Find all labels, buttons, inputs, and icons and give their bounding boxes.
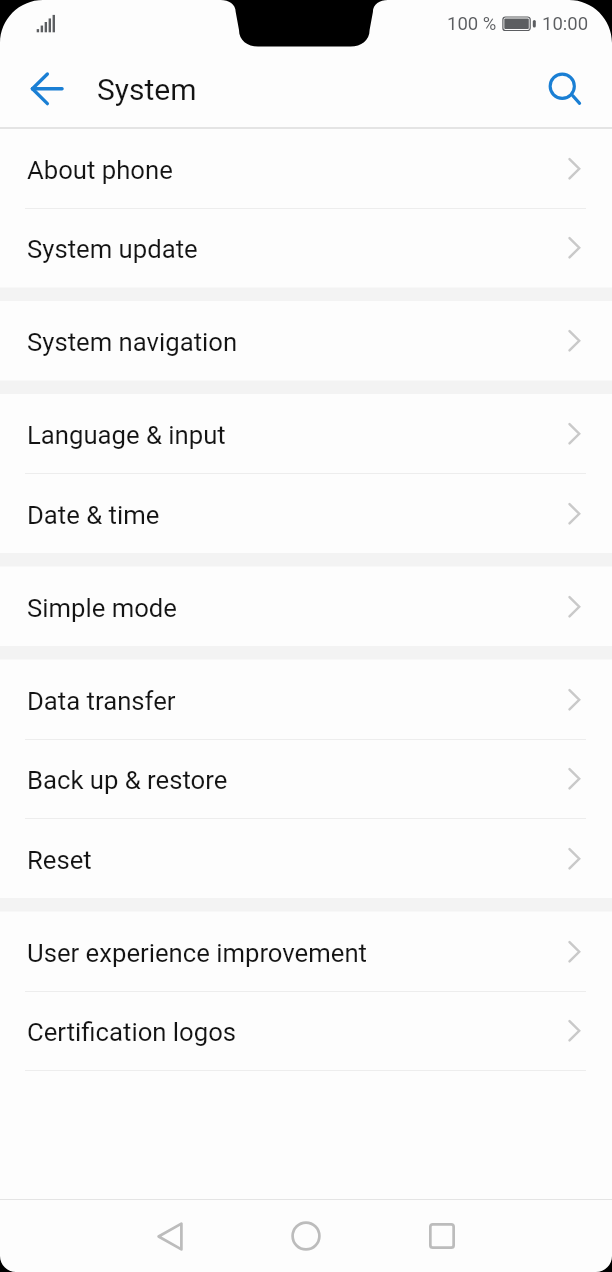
staticText: 10:00 [542,13,589,35]
staticText: System navigation [27,327,238,357]
staticText: Back up & restore [27,765,228,795]
button[interactable]: System update [0,208,612,288]
button[interactable]: About phone [0,129,612,209]
button[interactable]: Certification logos [0,991,612,1071]
button[interactable]: Language & input [0,394,612,474]
button[interactable]: User experience improvement [0,912,612,992]
staticText: Certification logos [27,1017,237,1047]
button[interactable]: Back [15,57,79,117]
staticText: About phone [27,155,173,185]
button[interactable]: Data transfer [0,660,612,740]
staticText: Language & input [27,420,226,450]
button[interactable]: Search [534,57,592,117]
button[interactable]: Back up & restore [0,739,612,819]
button[interactable]: Back [134,1200,206,1272]
staticText: System update [27,234,198,264]
staticText: System [97,72,197,107]
staticText: Data transfer [27,686,176,716]
staticText: Date & time [27,500,160,530]
button[interactable]: Home [270,1200,342,1272]
button[interactable]: Reset [0,819,612,899]
staticText: 100 % [447,13,497,35]
staticText: User experience improvement [27,938,367,968]
button[interactable]: Simple mode [0,567,612,647]
staticText: Reset [27,845,92,875]
staticText: Simple mode [27,593,177,623]
button[interactable]: Date & time [0,474,612,554]
button[interactable]: Recents [406,1200,478,1272]
button[interactable]: System navigation [0,301,612,381]
